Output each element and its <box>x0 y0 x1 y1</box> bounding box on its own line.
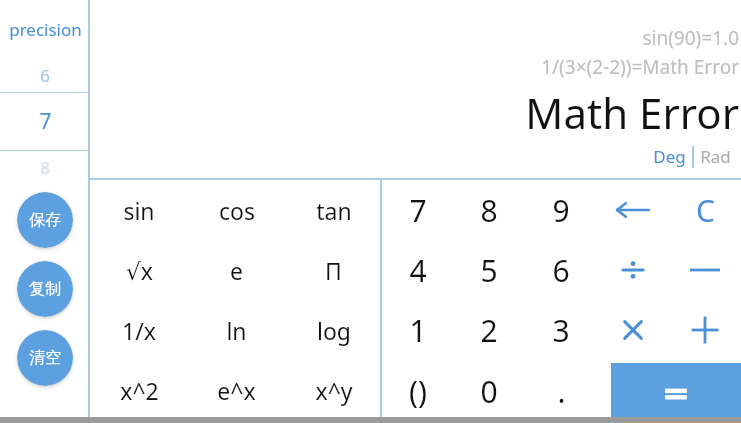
button[interactable]: 1 <box>382 300 453 360</box>
button[interactable]: Backspace <box>597 180 669 240</box>
staticText: e <box>230 255 243 286</box>
staticText: sin(90)=1.0 <box>642 25 739 51</box>
staticText: () <box>409 371 427 412</box>
staticText: log <box>317 315 351 346</box>
button[interactable]: . <box>525 360 597 423</box>
button[interactable]: 复制 <box>17 261 73 317</box>
staticText: 9 <box>552 190 570 231</box>
staticText: Π <box>325 255 342 286</box>
button[interactable]: cos <box>188 180 285 240</box>
staticText: 7 <box>39 107 52 136</box>
staticText: 1/x <box>122 315 156 346</box>
staticText: Math Error <box>525 84 739 141</box>
staticText: ln <box>226 315 247 346</box>
staticText: Rad <box>700 145 731 168</box>
button[interactable]: Rad <box>694 145 737 168</box>
button[interactable]: x^y <box>285 360 382 420</box>
staticText: 4 <box>409 250 427 291</box>
button[interactable]: e <box>188 240 285 300</box>
button[interactable]: Multiply <box>597 300 669 360</box>
staticText: 6 <box>40 64 50 87</box>
button[interactable]: 7 <box>0 93 90 150</box>
staticText: tan <box>316 195 352 226</box>
staticText: 7 <box>409 190 427 231</box>
staticText: cos <box>219 195 255 226</box>
staticText: Deg <box>653 145 686 168</box>
staticText: 5 <box>480 250 498 291</box>
staticText: precision <box>9 18 82 41</box>
staticText: 0 <box>480 371 498 412</box>
staticText: C <box>696 190 715 231</box>
button[interactable]: Deg <box>647 145 692 168</box>
staticText: 6 <box>552 250 570 291</box>
staticText: . <box>557 371 566 412</box>
button[interactable]: 6 <box>525 240 597 300</box>
button[interactable]: Clear <box>669 180 741 240</box>
button[interactable]: log <box>285 300 382 360</box>
staticText: 1/(3×(2-2))=Math Error <box>541 54 739 80</box>
button[interactable]: Π <box>285 240 382 300</box>
button[interactable]: 0 <box>453 360 525 423</box>
staticText: 复制 <box>29 279 61 299</box>
button[interactable]: e^x <box>188 360 285 420</box>
button[interactable]: 9 <box>525 180 597 240</box>
staticText: x^2 <box>120 375 159 406</box>
button[interactable]: Divide <box>597 240 669 300</box>
staticText: 1 <box>409 310 427 351</box>
staticText: 2 <box>480 310 498 351</box>
button[interactable]: 6 <box>0 58 90 92</box>
button[interactable]: 保存 <box>17 192 73 248</box>
staticText: 保存 <box>29 210 61 230</box>
staticText: 清空 <box>29 348 61 368</box>
button[interactable]: precision <box>0 0 90 58</box>
staticText: 3 <box>552 310 570 351</box>
button[interactable]: 8 <box>453 180 525 240</box>
button[interactable]: () <box>382 360 453 423</box>
staticText: √x <box>126 255 153 286</box>
button[interactable]: 2 <box>453 300 525 360</box>
button[interactable]: 7 <box>382 180 453 240</box>
button[interactable]: 1/x <box>90 300 188 360</box>
button[interactable]: tan <box>285 180 382 240</box>
button[interactable]: √x <box>90 240 188 300</box>
button[interactable]: x^2 <box>90 360 188 420</box>
button[interactable]: 8 <box>0 151 90 183</box>
button[interactable]: 清空 <box>17 330 73 386</box>
staticText: sin <box>123 195 155 226</box>
button[interactable]: sin <box>90 180 188 240</box>
staticText: e^x <box>217 375 256 406</box>
button[interactable]: Equals <box>611 363 741 423</box>
button[interactable]: Minus <box>669 240 741 300</box>
button[interactable]: 4 <box>382 240 453 300</box>
staticText: x^y <box>315 375 353 406</box>
button[interactable]: 3 <box>525 300 597 360</box>
button[interactable]: Plus <box>669 300 741 360</box>
staticText: 8 <box>40 156 50 179</box>
button[interactable]: ln <box>188 300 285 360</box>
button[interactable]: 5 <box>453 240 525 300</box>
staticText: 8 <box>480 190 498 231</box>
